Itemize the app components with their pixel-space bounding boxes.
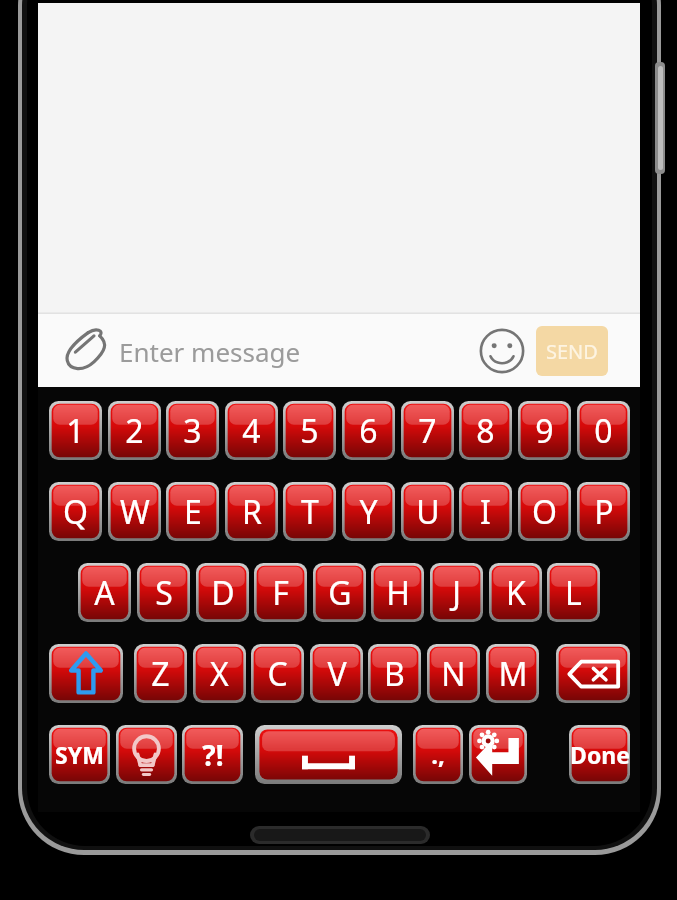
staticText: Enter message (119, 334, 301, 369)
staticText: U (416, 490, 440, 534)
button[interactable]: ?! (182, 725, 243, 784)
button[interactable]: 1 (49, 401, 102, 460)
staticText: F (272, 571, 289, 615)
button[interactable]: I (459, 482, 512, 541)
staticText: R (242, 490, 262, 534)
button[interactable]: C (251, 644, 304, 703)
button[interactable]: 2 (108, 401, 161, 460)
button[interactable]: 4 (225, 401, 278, 460)
button[interactable]: J (430, 563, 483, 622)
button[interactable]: Backspace (556, 644, 630, 703)
staticText: ?! (202, 736, 224, 774)
button[interactable]: 5 (283, 401, 336, 460)
staticText: M (498, 652, 528, 696)
staticText: 5 (300, 409, 319, 453)
staticText: S (155, 571, 173, 615)
button[interactable]: V (310, 644, 363, 703)
staticText: I (480, 490, 491, 534)
staticText: SEND (546, 338, 598, 365)
staticText: 8 (476, 409, 495, 453)
button[interactable]: Done (569, 725, 630, 784)
button[interactable]: F (254, 563, 307, 622)
button[interactable]: Y (342, 482, 395, 541)
staticText: C (267, 652, 288, 696)
button[interactable]: 3 (166, 401, 219, 460)
button[interactable]: O (518, 482, 571, 541)
button[interactable]: S (137, 563, 190, 622)
button[interactable]: N (427, 644, 480, 703)
button[interactable]: D (196, 563, 249, 622)
staticText: SYM (55, 739, 104, 770)
button[interactable]: R (225, 482, 278, 541)
staticText: T (301, 490, 319, 534)
staticText: W (120, 490, 150, 534)
staticText: Z (151, 652, 170, 696)
button[interactable]: U (401, 482, 454, 541)
button[interactable]: W (108, 482, 161, 541)
button[interactable]: ., (413, 725, 463, 784)
button[interactable]: B (368, 644, 421, 703)
button[interactable]: 9 (518, 401, 571, 460)
staticText: Y (359, 490, 378, 534)
button[interactable]: K (489, 563, 542, 622)
staticText: Q (63, 490, 88, 534)
staticText: X (210, 652, 229, 696)
staticText: 0 (594, 409, 613, 453)
button[interactable]: T (283, 482, 336, 541)
button[interactable]: 8 (459, 401, 512, 460)
button[interactable]: E (166, 482, 219, 541)
staticText: 9 (535, 409, 554, 453)
button[interactable]: Z (134, 644, 187, 703)
staticText: D (211, 571, 235, 615)
staticText: J (452, 571, 461, 615)
staticText: O (532, 490, 557, 534)
staticText: E (184, 490, 202, 534)
button[interactable]: Attach (58, 324, 116, 378)
button[interactable]: Space (255, 725, 402, 784)
button[interactable]: Q (49, 482, 102, 541)
button[interactable]: M (486, 644, 539, 703)
staticText: N (441, 652, 466, 696)
staticText: 7 (418, 409, 437, 453)
button[interactable]: 0 (577, 401, 630, 460)
staticText: G (328, 571, 352, 615)
button[interactable]: L (547, 563, 600, 622)
button[interactable]: H (371, 563, 424, 622)
button[interactable]: Emoji (478, 327, 526, 375)
staticText: 4 (242, 409, 261, 453)
button[interactable]: X (193, 644, 246, 703)
staticText: H (386, 571, 410, 615)
staticText: V (327, 652, 347, 696)
staticText: 6 (359, 409, 378, 453)
staticText: P (594, 490, 614, 534)
staticText: Done (570, 739, 630, 770)
staticText: L (565, 571, 582, 615)
button[interactable]: P (577, 482, 630, 541)
button[interactable]: SYM (49, 725, 110, 784)
staticText: K (506, 571, 526, 615)
button[interactable]: Enter (469, 725, 527, 784)
button[interactable]: A (78, 563, 131, 622)
button[interactable]: 7 (401, 401, 454, 460)
staticText: A (94, 571, 115, 615)
staticText: 2 (125, 409, 144, 453)
staticText: B (384, 652, 405, 696)
button[interactable]: SEND (536, 326, 608, 376)
staticText: 3 (183, 409, 202, 453)
staticText: ., (431, 738, 445, 771)
staticText: 1 (66, 409, 85, 453)
button[interactable]: Shift (49, 644, 123, 703)
button[interactable]: Suggestions (116, 725, 177, 784)
button[interactable]: G (313, 563, 366, 622)
button[interactable]: 6 (342, 401, 395, 460)
